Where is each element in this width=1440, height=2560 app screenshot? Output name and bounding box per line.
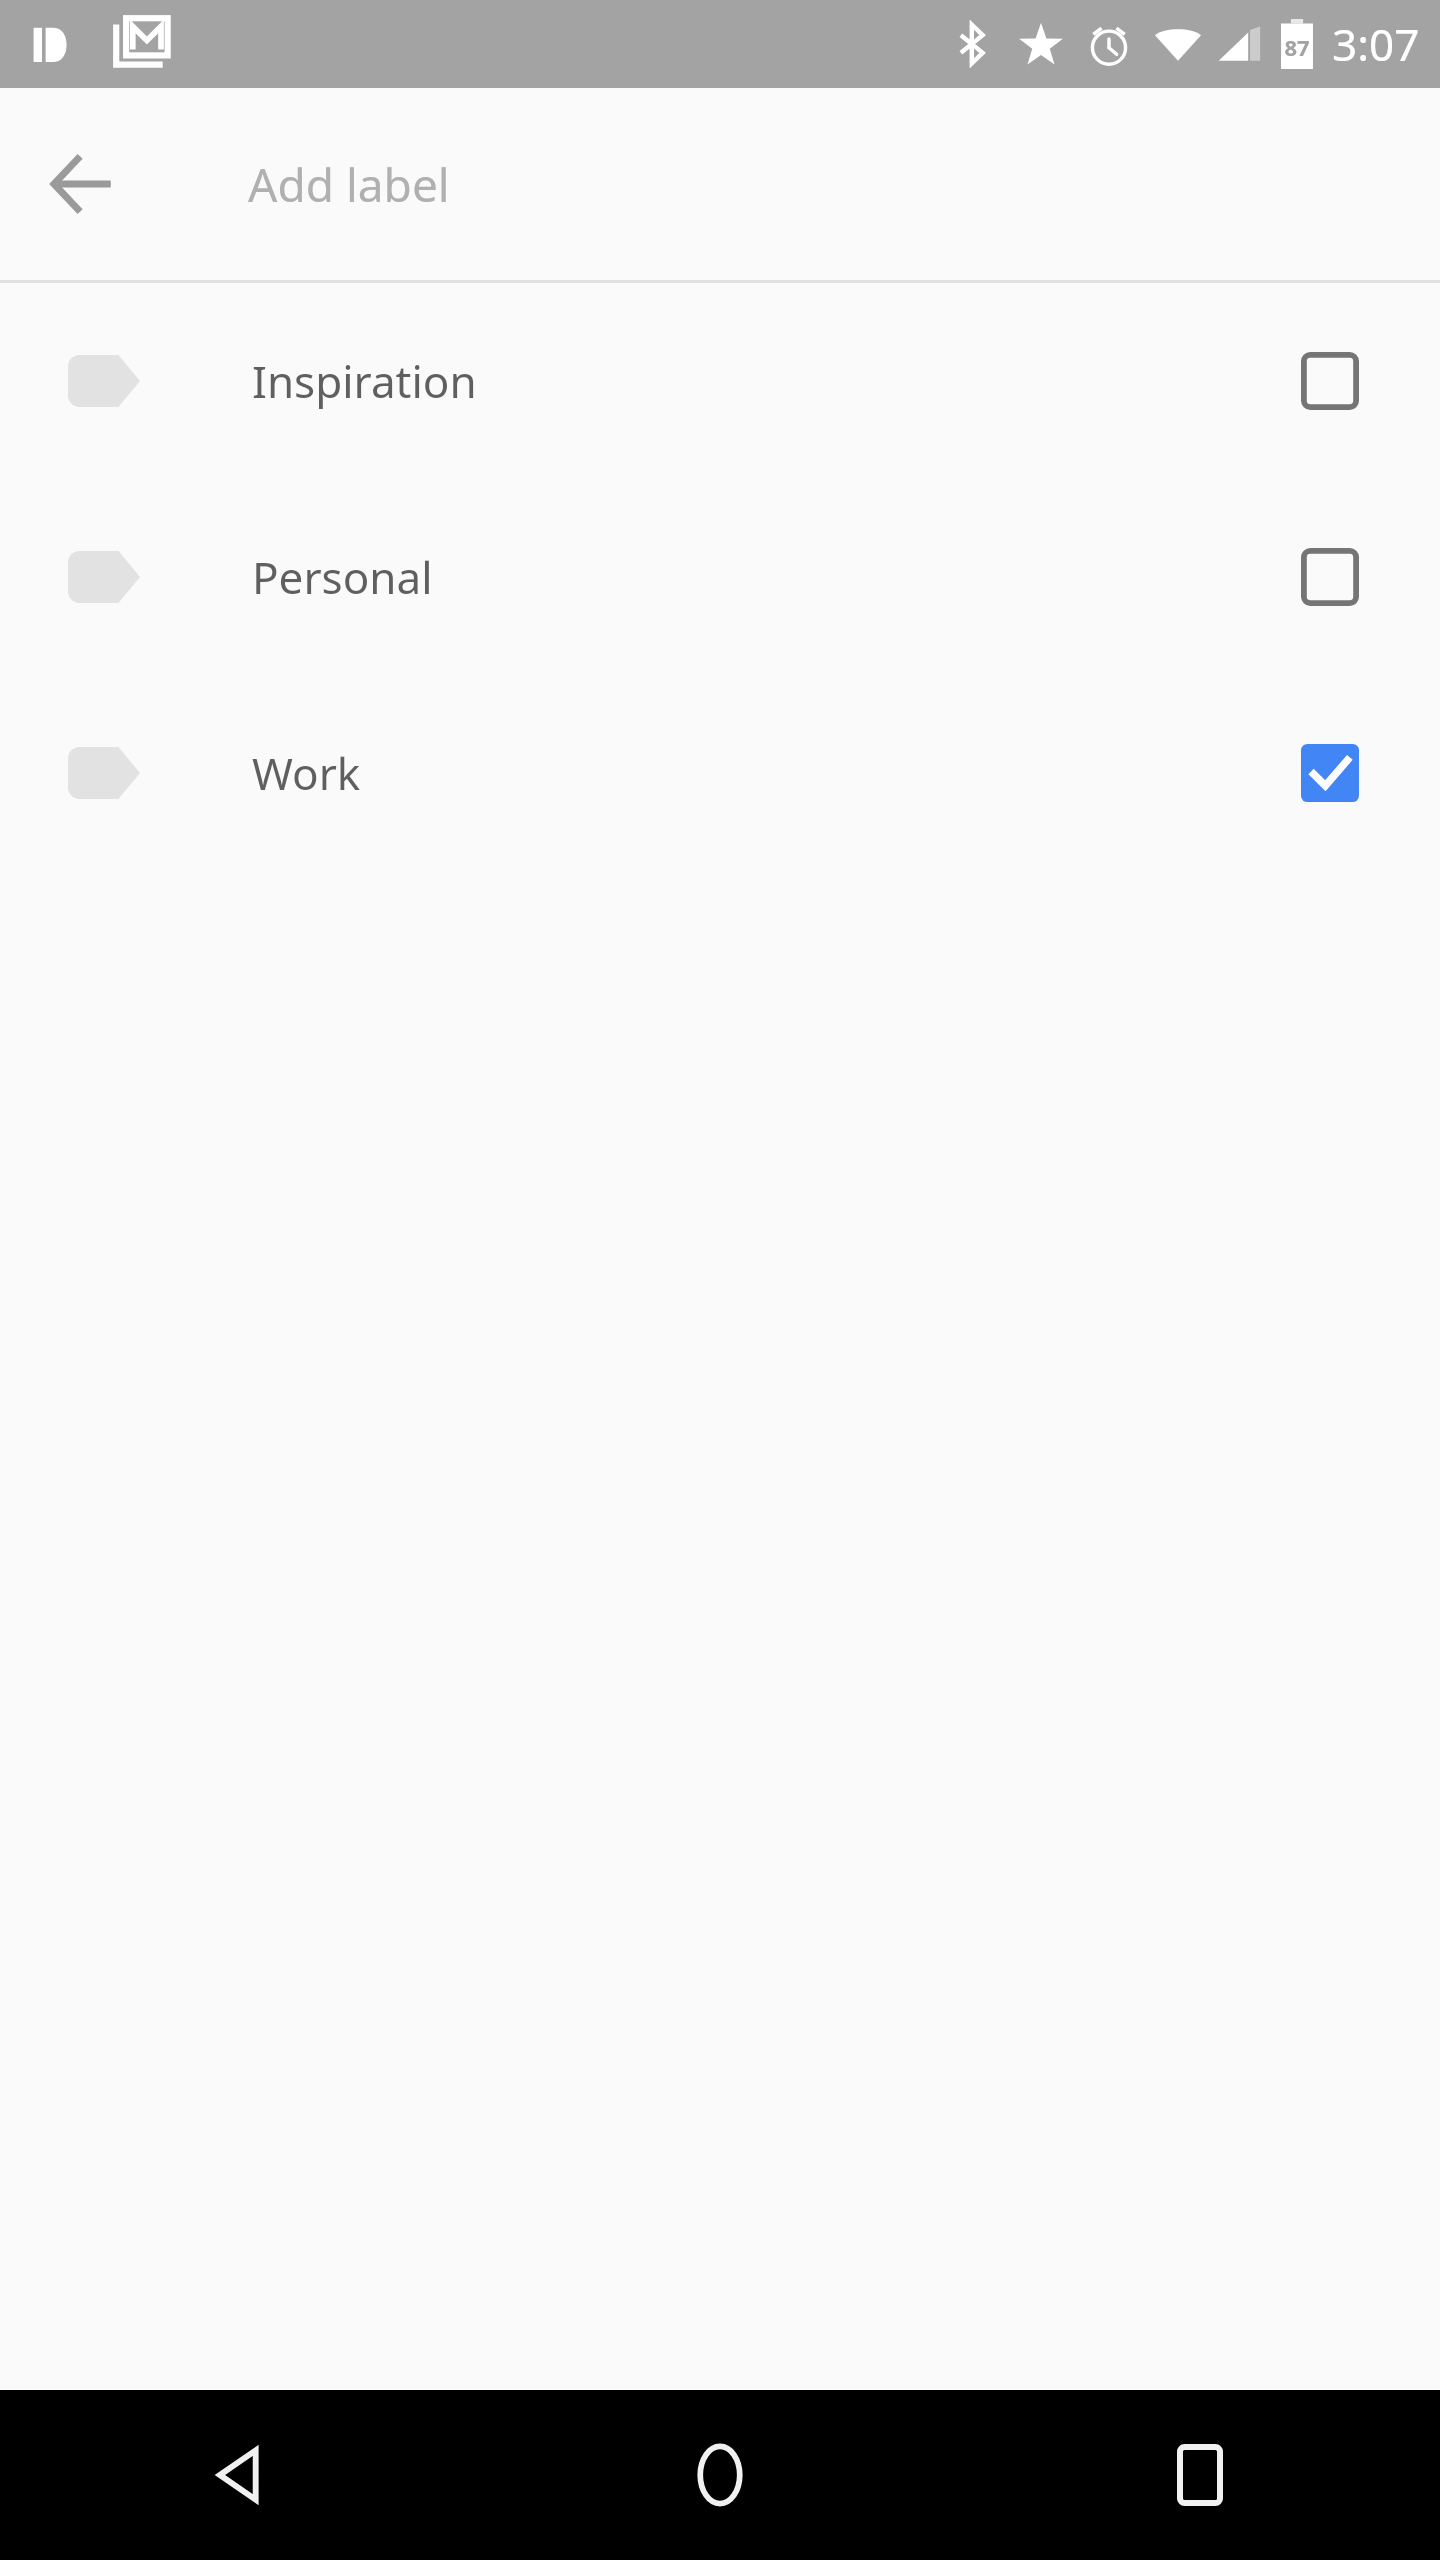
button[interactable]: Personal: [0, 479, 1440, 675]
staticText: 3:07: [1332, 14, 1420, 74]
button[interactable]: Checked: [1282, 725, 1378, 821]
staticText: Work: [252, 743, 361, 803]
button[interactable]: Back: [28, 129, 138, 239]
staticText: Inspiration: [252, 351, 477, 411]
button[interactable]: Recent apps: [960, 2390, 1440, 2560]
staticText: Add label: [248, 153, 450, 216]
button[interactable]: Back: [0, 2390, 480, 2560]
staticText: 87: [1284, 32, 1310, 62]
button[interactable]: Inspiration: [0, 283, 1440, 479]
button[interactable]: Unchecked: [1282, 529, 1378, 625]
button[interactable]: Home: [480, 2390, 960, 2560]
button[interactable]: Work: [0, 675, 1440, 871]
button[interactable]: Unchecked: [1282, 333, 1378, 429]
staticText: Personal: [252, 547, 433, 607]
